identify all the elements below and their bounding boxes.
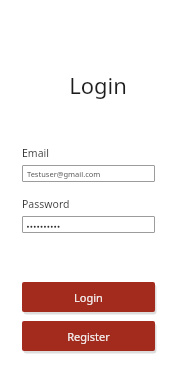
button[interactable]: Register <box>22 321 155 351</box>
button[interactable]: Testuser@gmail.com <box>22 165 155 182</box>
staticText: Testuser@gmail.com <box>27 169 101 179</box>
staticText: Register <box>67 329 110 344</box>
staticText: Email <box>22 146 49 160</box>
button[interactable]: Login <box>22 282 155 312</box>
staticText: Login <box>74 290 103 305</box>
staticText: Password <box>22 197 70 211</box>
staticText: Login <box>69 70 127 100</box>
button[interactable] <box>22 216 155 233</box>
